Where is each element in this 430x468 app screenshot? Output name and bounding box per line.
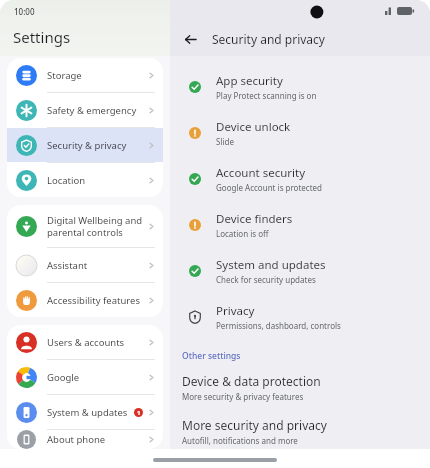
button[interactable]: System and updates (170, 248, 430, 294)
staticText: More security and privacy (182, 417, 327, 433)
staticText: Storage (47, 69, 147, 82)
staticText: 10:00 (14, 6, 35, 17)
staticText: Permissions, dashboard, controls (216, 320, 341, 331)
staticText: Other settings (182, 350, 241, 362)
staticText: Device unlock (216, 119, 291, 135)
staticText: System and updates (216, 257, 326, 273)
staticText: Users & accounts (47, 336, 147, 349)
button[interactable]: Device finders (170, 202, 430, 248)
button[interactable]: Account security (170, 156, 430, 202)
staticText: 1 (137, 409, 141, 417)
button[interactable]: Digital Wellbeing and parental controls (7, 205, 163, 247)
button[interactable]: Google (7, 360, 163, 394)
button[interactable]: Safety & emergency (7, 93, 163, 127)
staticText: Google (47, 371, 147, 384)
staticText: Google Account is protected (216, 182, 323, 193)
staticText: More security & privacy features (182, 391, 304, 402)
staticText: Settings (13, 27, 71, 47)
button[interactable]: System & updates (7, 395, 163, 429)
staticText: Account security (216, 165, 306, 181)
staticText: Security and privacy (212, 31, 325, 47)
button[interactable]: Location (7, 163, 163, 197)
button[interactable]: App security (170, 64, 430, 110)
button[interactable]: Device & data protection (170, 371, 430, 404)
button[interactable]: Back (178, 27, 202, 51)
button[interactable]: Storage (7, 58, 163, 92)
button[interactable]: Security & privacy (7, 128, 163, 162)
staticText: Privacy (216, 303, 255, 319)
staticText: Play Protect scanning is on (216, 90, 317, 101)
staticText: Check for security updates (216, 274, 316, 285)
button[interactable]: Accessibility features (7, 283, 163, 317)
staticText: Location is off (216, 228, 269, 239)
staticText: Location (47, 174, 147, 187)
staticText: Device & data protection (182, 373, 321, 389)
staticText: Security & privacy (47, 139, 147, 152)
staticText: App security (216, 73, 283, 89)
staticText: Device finders (216, 211, 293, 227)
button[interactable]: Users & accounts (7, 325, 163, 359)
button[interactable]: About phone (7, 430, 163, 449)
button[interactable]: Device unlock (170, 110, 430, 156)
staticText: Safety & emergency (47, 104, 147, 117)
staticText: About phone (47, 433, 147, 446)
staticText: Autofill, notifications and more (182, 435, 298, 446)
staticText: Assistant (47, 259, 147, 272)
button[interactable]: More security and privacy (170, 415, 430, 448)
button[interactable]: Privacy (170, 294, 430, 340)
button[interactable]: Assistant (7, 248, 163, 282)
staticText: Slide (216, 136, 234, 147)
staticText: Accessibility features (47, 294, 147, 307)
staticText: Digital Wellbeing and parental controls (47, 214, 147, 239)
staticText: System & updates (47, 406, 134, 419)
